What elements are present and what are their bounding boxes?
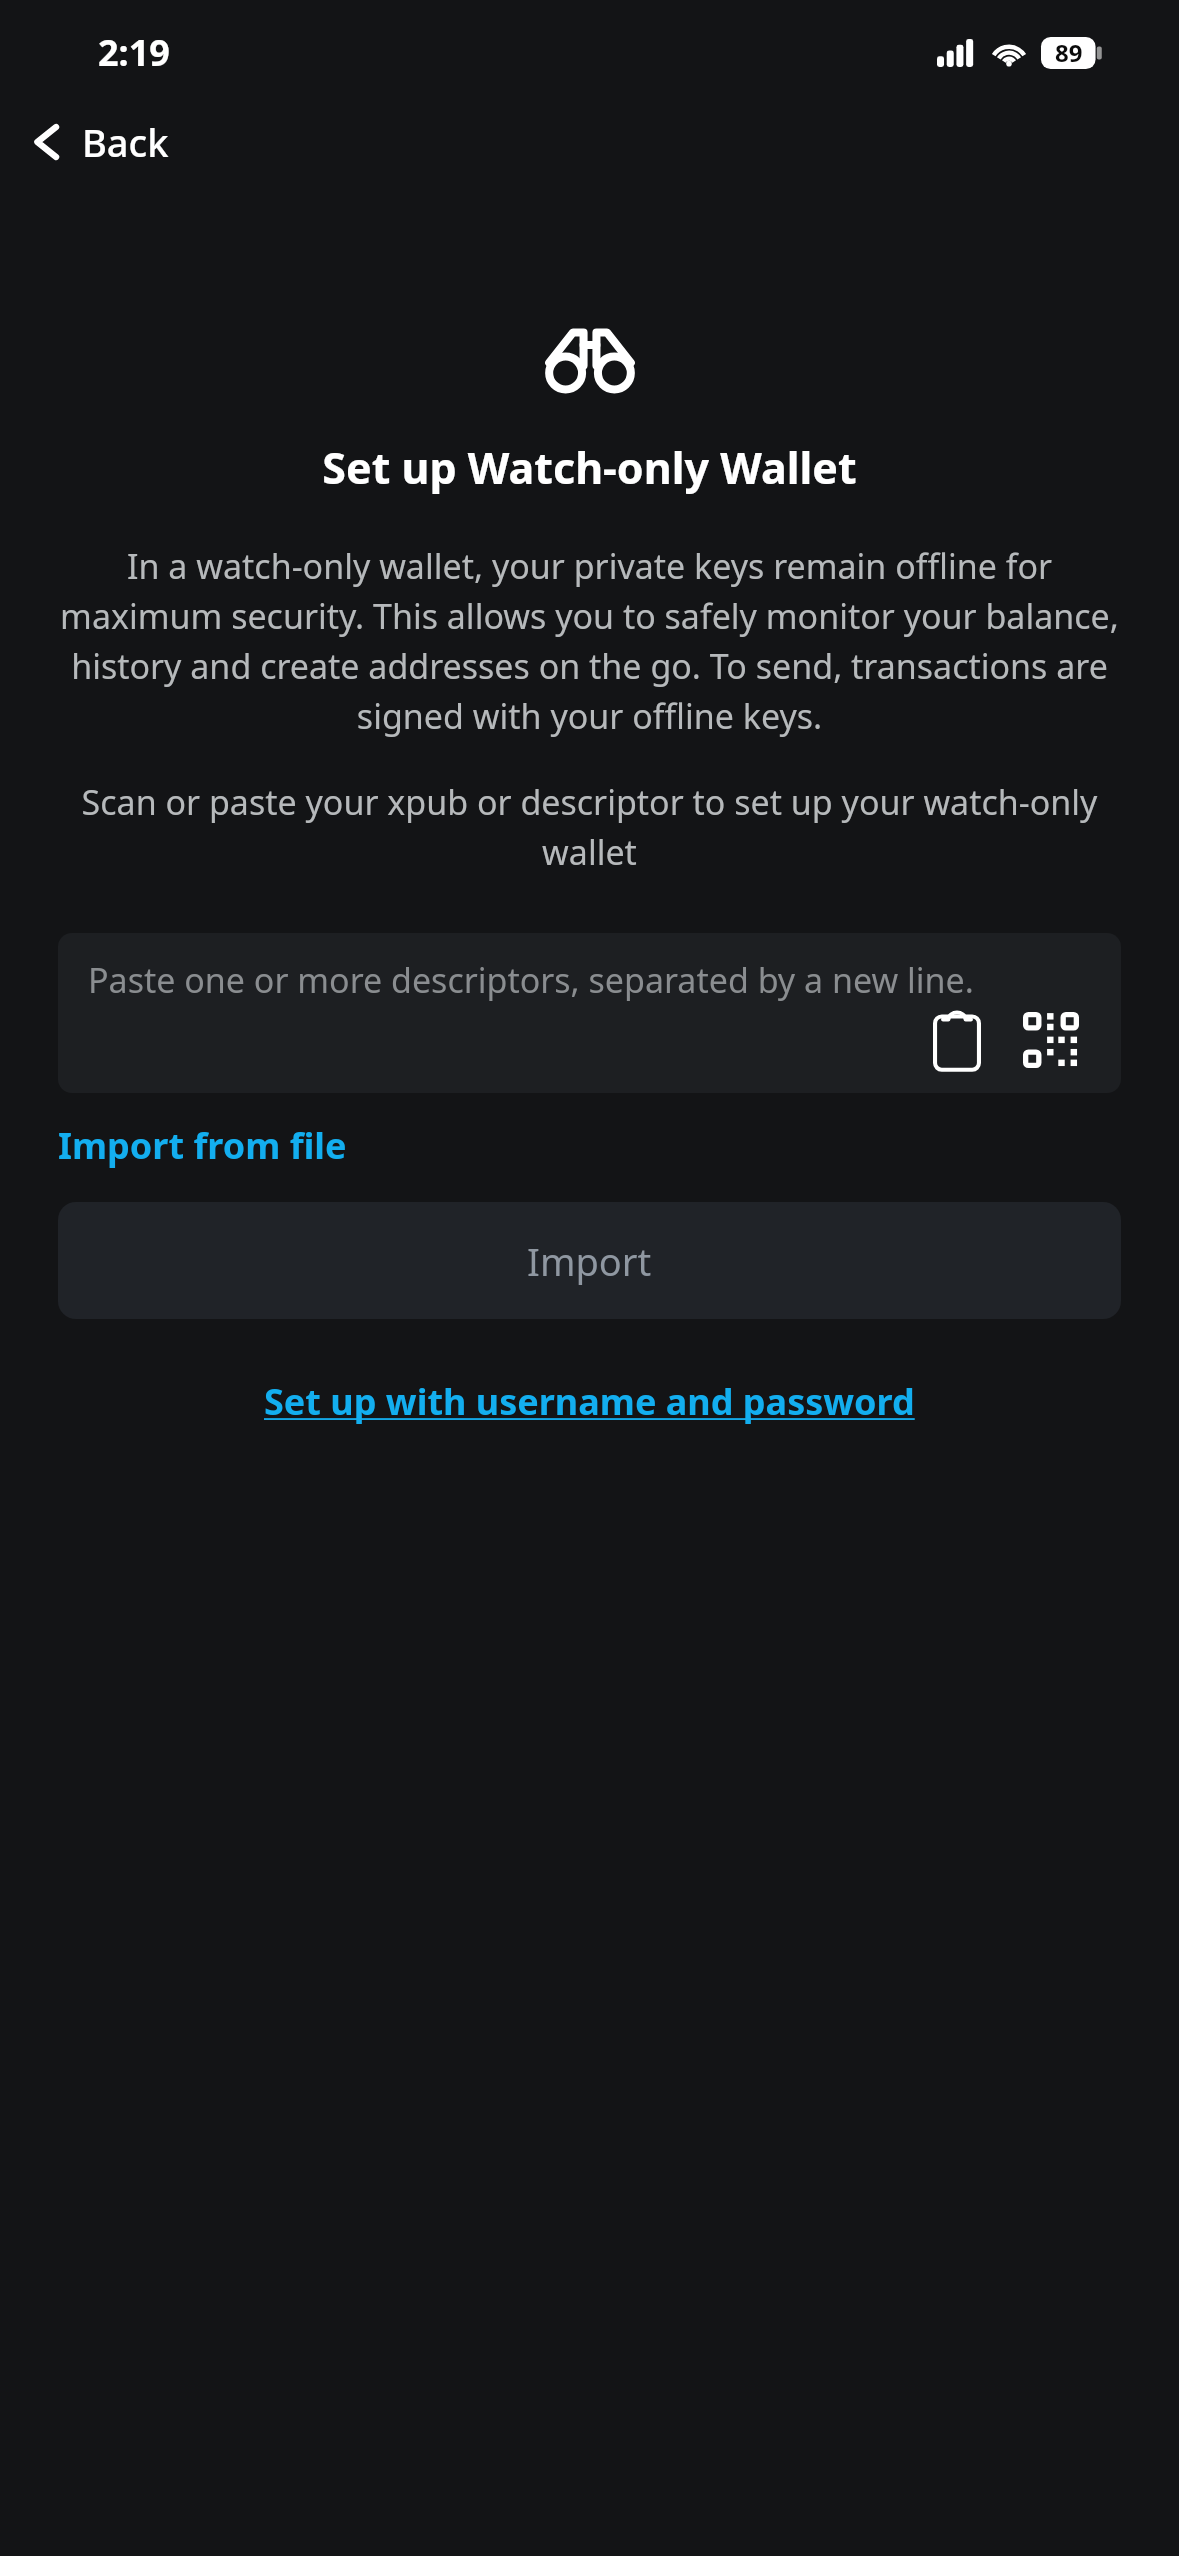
staticText: Scan or paste your xpub or descriptor to… (58, 779, 1121, 875)
staticText: 89 (1055, 36, 1083, 69)
staticText: 2:19 (98, 28, 170, 77)
button[interactable]: Import (58, 1202, 1121, 1319)
staticText: In a watch-only wallet, your private key… (58, 543, 1121, 739)
staticText: Import (527, 1235, 652, 1287)
button[interactable]: Set up with username and password (252, 1365, 927, 1438)
staticText: Paste one or more descriptors, separated… (88, 957, 974, 1003)
staticText: Set up with username and password (264, 1377, 915, 1426)
button[interactable]: Import from file (50, 1111, 355, 1180)
button[interactable]: Paste from clipboard (927, 1003, 987, 1077)
staticText: Import from file (58, 1121, 347, 1170)
staticText: Set up Watch-only Wallet (0, 438, 1179, 497)
button[interactable]: Scan QR code (1017, 1006, 1085, 1074)
button[interactable]: Paste one or more descriptors, separated… (58, 933, 1121, 1093)
staticText: Back (82, 116, 169, 168)
button[interactable]: Back (20, 102, 177, 182)
